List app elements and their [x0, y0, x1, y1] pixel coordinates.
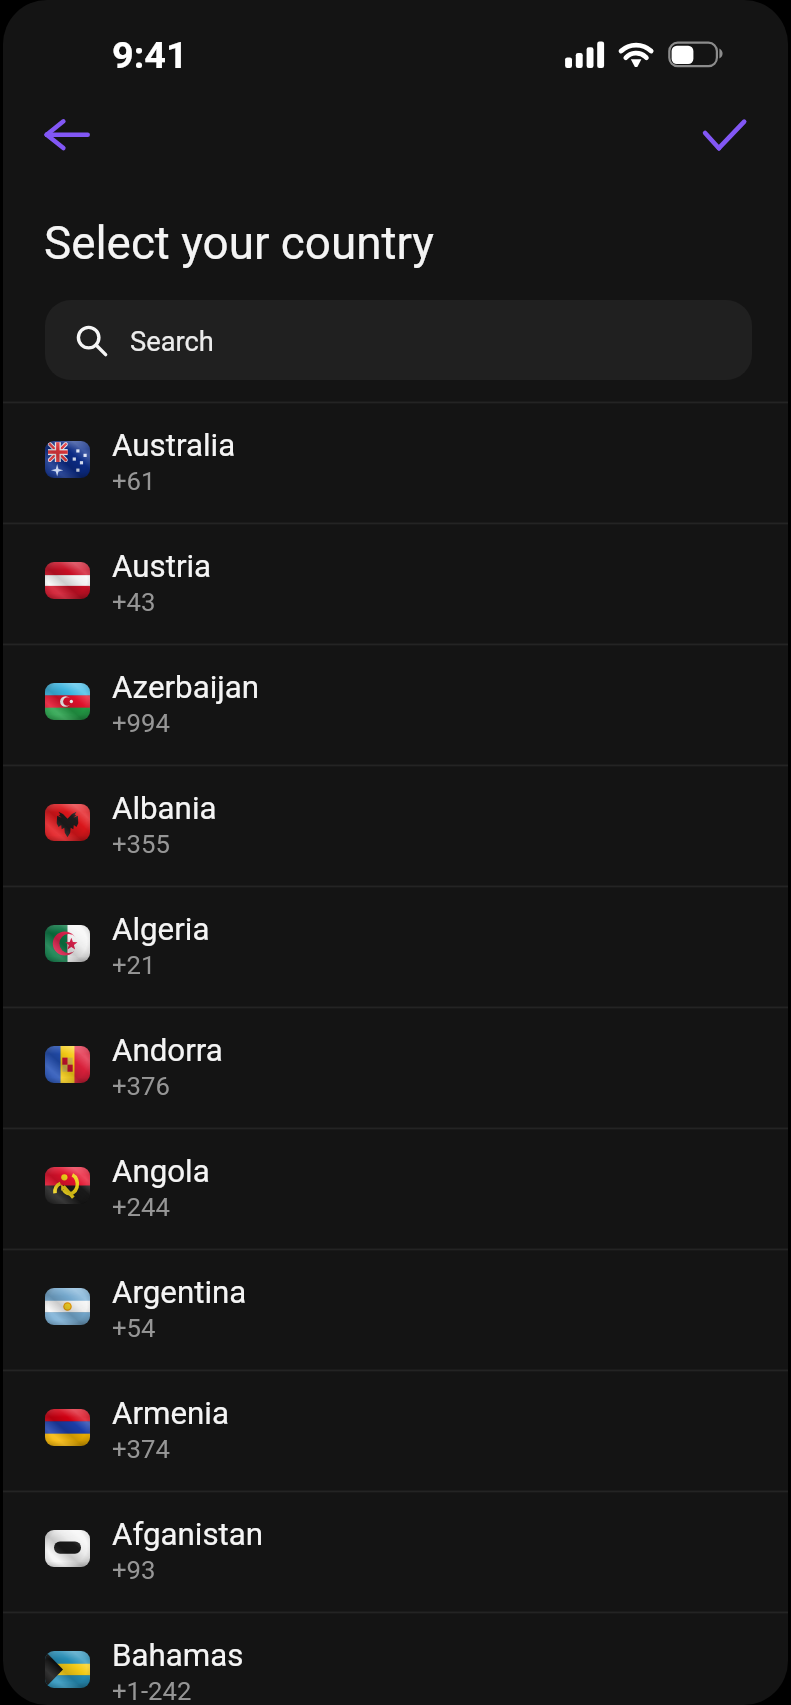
button[interactable]: Algeria — [3, 885, 788, 1006]
button[interactable]: Armenia — [3, 1369, 788, 1490]
staticText: Argentina — [112, 1274, 247, 1311]
staticText: +994 — [112, 708, 170, 738]
staticText: Austria — [112, 548, 212, 585]
staticText: +355 — [112, 829, 170, 859]
staticText: Albania — [112, 790, 217, 827]
staticText: 9:41 — [112, 33, 188, 77]
staticText: Australia — [112, 427, 236, 464]
staticText: +43 — [112, 587, 156, 617]
button[interactable]: Back — [35, 101, 103, 169]
button[interactable]: Search — [45, 300, 752, 380]
button[interactable]: Australia — [3, 401, 788, 522]
staticText: +21 — [112, 950, 156, 980]
button[interactable]: Azerbaijan — [3, 643, 788, 764]
button[interactable]: Angola — [3, 1127, 788, 1248]
button[interactable]: Andorra — [3, 1006, 788, 1127]
staticText: +61 — [112, 466, 156, 496]
staticText: Andorra — [112, 1032, 223, 1069]
staticText: Algeria — [112, 911, 210, 948]
staticText: +54 — [112, 1313, 156, 1343]
staticText: +244 — [112, 1192, 170, 1222]
button[interactable]: Albania — [3, 764, 788, 885]
button[interactable]: Argentina — [3, 1248, 788, 1369]
button[interactable]: Bahamas — [3, 1611, 788, 1705]
staticText: +1-242 — [112, 1676, 192, 1705]
button[interactable]: Afganistan — [3, 1490, 788, 1611]
staticText: Angola — [112, 1153, 210, 1190]
staticText: Afganistan — [112, 1516, 264, 1553]
staticText: Select your country — [44, 217, 434, 271]
staticText: Bahamas — [112, 1637, 244, 1674]
staticText: Azerbaijan — [112, 669, 260, 706]
staticText: Search — [130, 326, 214, 358]
button[interactable]: Austria — [3, 522, 788, 643]
staticText: +376 — [112, 1071, 170, 1101]
staticText: Armenia — [112, 1395, 229, 1432]
staticText: +374 — [112, 1434, 170, 1464]
button[interactable]: Confirm selection — [694, 101, 762, 169]
staticText: +93 — [112, 1555, 156, 1585]
